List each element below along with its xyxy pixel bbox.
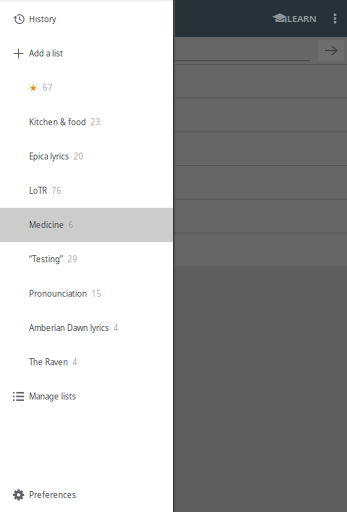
button[interactable]: Search (318, 40, 344, 61)
button[interactable]: LEARN (268, 0, 320, 37)
button[interactable]: The Raven (0, 345, 173, 379)
staticText: Add a list (29, 48, 63, 59)
button[interactable]: Pronounciation (0, 276, 173, 311)
button[interactable]: Kitchen & food (0, 105, 173, 139)
staticText: LEARN (287, 12, 317, 25)
staticText: 76 (51, 185, 61, 196)
staticText: Epica lyrics (29, 151, 69, 162)
button[interactable]: More options (328, 0, 342, 37)
button[interactable]: Add a list (0, 36, 173, 71)
button[interactable]: 67 (0, 71, 173, 105)
button[interactable]: Manage lists (0, 379, 173, 414)
staticText: The Raven (29, 357, 68, 367)
staticText: 15 (91, 288, 101, 299)
button[interactable]: LoTR (0, 173, 173, 208)
staticText: 29 (67, 254, 77, 264)
staticText: 23 (90, 117, 100, 127)
staticText: 4 (113, 322, 118, 333)
button[interactable]: History (0, 2, 173, 36)
staticText: 4 (72, 357, 77, 367)
staticText: Preferences (29, 489, 76, 500)
staticText: “Testing” (29, 254, 63, 264)
staticText: Pronounciation (29, 288, 87, 299)
staticText: Amberian Dawn lyrics (29, 322, 109, 333)
staticText: Medicine (29, 220, 64, 230)
staticText: 20 (73, 151, 83, 162)
staticText: 6 (68, 220, 73, 230)
button[interactable]: “Testing” (0, 242, 173, 276)
staticText: 67 (43, 82, 53, 93)
button[interactable]: Amberian Dawn lyrics (0, 311, 173, 345)
button[interactable]: Preferences (0, 478, 173, 512)
button[interactable]: Medicine (0, 208, 173, 242)
staticText: Manage lists (29, 391, 76, 402)
staticText: History (29, 14, 56, 24)
staticText: Kitchen & food (29, 117, 86, 127)
button[interactable]: Epica lyrics (0, 139, 173, 173)
staticText: LoTR (29, 185, 47, 196)
